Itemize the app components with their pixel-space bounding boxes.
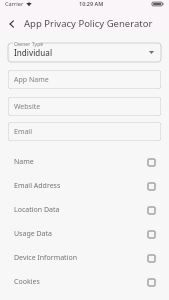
button[interactable]: Back	[4, 16, 20, 32]
button[interactable]: App Name	[8, 70, 161, 89]
staticText: App Privacy Policy Generator	[24, 17, 153, 30]
staticText: Usage Data	[14, 229, 52, 239]
button[interactable]: Cookies	[8, 270, 161, 294]
button[interactable]: Email Address	[8, 174, 161, 198]
staticText: Email	[14, 127, 32, 137]
button[interactable]: Usage Data	[8, 222, 161, 246]
staticText: Individual	[14, 47, 53, 58]
button[interactable]: Owner Type	[8, 40, 161, 62]
button[interactable]: Device Information	[8, 246, 161, 270]
staticText: Email Address	[14, 181, 61, 191]
button[interactable]: Website	[8, 97, 161, 116]
staticText: App Name	[14, 75, 49, 85]
button[interactable]: Name	[8, 150, 161, 174]
staticText: 10:29 AM	[79, 0, 104, 7]
button[interactable]: Email	[8, 122, 161, 141]
staticText: Device Information	[14, 253, 78, 263]
button[interactable]: Location Data	[8, 198, 161, 222]
staticText: Carrier	[5, 0, 24, 7]
staticText: Owner Type	[14, 40, 44, 47]
staticText: Name	[14, 157, 34, 167]
staticText: Location Data	[14, 205, 60, 215]
staticText: Website	[14, 102, 41, 112]
staticText: Cookies	[14, 277, 40, 287]
